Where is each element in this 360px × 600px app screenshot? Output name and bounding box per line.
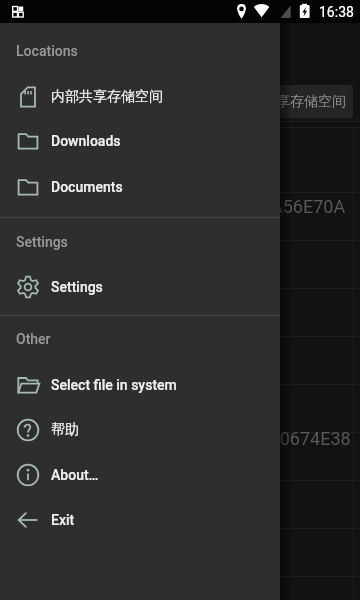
button[interactable]: 帮助 — [0, 408, 280, 452]
button[interactable]: 内部共享存储空间 — [0, 75, 280, 119]
staticText: C0674E38 — [268, 428, 351, 449]
button[interactable]: Documents — [0, 165, 280, 209]
staticText: Select file in system — [51, 377, 177, 393]
staticText: Documents — [51, 179, 123, 195]
staticText: 16:38 — [319, 4, 354, 20]
staticText: 帮助 — [51, 421, 79, 439]
staticText: Settings — [16, 234, 68, 250]
staticText: About… — [51, 467, 99, 483]
staticText: Downloads — [51, 133, 121, 149]
button[interactable]: Select file in system — [0, 363, 280, 407]
staticText: Locations — [16, 43, 78, 59]
button[interactable]: Exit — [0, 498, 280, 542]
staticText: 内部共享存储空间 — [234, 93, 346, 111]
staticText: 内部共享存储空间 — [51, 88, 163, 106]
button[interactable]: 内部共享存储空间 — [8, 85, 353, 118]
staticText: A56E70A — [271, 196, 346, 217]
staticText: Other — [16, 331, 51, 347]
button[interactable]: Downloads — [0, 119, 280, 163]
staticText: Settings — [51, 279, 103, 295]
staticText: Exit — [51, 512, 75, 528]
button[interactable]: About… — [0, 453, 280, 497]
button[interactable]: Settings — [0, 265, 280, 309]
